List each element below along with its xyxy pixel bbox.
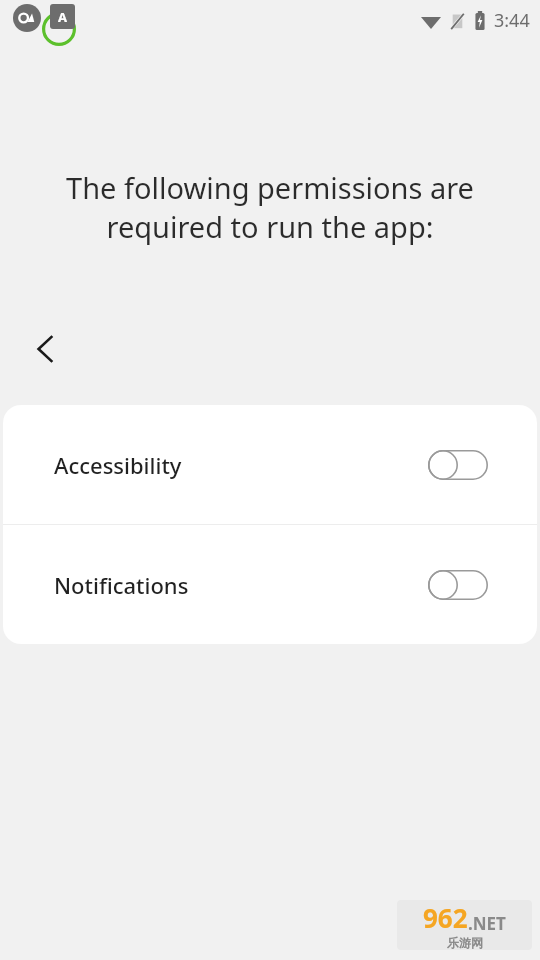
staticText: Notifications [54,570,189,600]
button[interactable]: Toggle [427,448,489,482]
staticText: A [58,8,67,26]
staticText: .NET [468,912,506,935]
button[interactable]: Back [22,326,68,372]
button[interactable]: Toggle [427,568,489,602]
staticText: 3:44 [494,8,530,33]
staticText: 962 [423,900,468,935]
staticText: The following permissions are required t… [28,168,512,246]
staticText: 乐游网 [447,935,483,950]
button[interactable]: Accessibility [3,405,537,524]
button[interactable]: Notifications [3,525,537,644]
staticText: Accessibility [54,450,182,480]
